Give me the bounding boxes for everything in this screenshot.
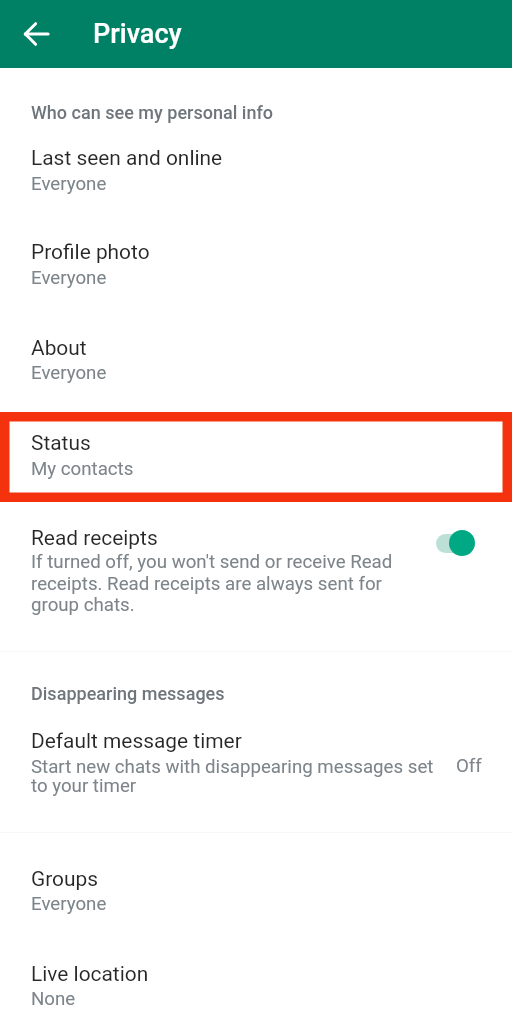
staticText: Privacy — [93, 18, 182, 50]
staticText: Live location — [31, 962, 149, 986]
staticText: Who can see my personal info — [31, 102, 274, 123]
button[interactable]: Profile photo — [0, 226, 512, 310]
button[interactable]: Read receipts on — [428, 526, 486, 560]
staticText: Status — [31, 431, 91, 455]
staticText: Default message timer — [31, 729, 242, 753]
staticText: Everyone — [31, 362, 107, 384]
button[interactable]: Default message timer — [0, 716, 512, 824]
staticText: Groups — [31, 867, 99, 891]
button[interactable]: Read receipts — [0, 510, 512, 630]
button[interactable]: Groups — [0, 852, 512, 936]
staticText: Everyone — [31, 893, 107, 915]
staticText: Disappearing messages — [31, 683, 225, 704]
staticText: My contacts — [31, 458, 134, 480]
staticText: Everyone — [31, 267, 107, 289]
staticText: Everyone — [31, 173, 107, 195]
staticText: If turned off, you won't send or receive… — [31, 551, 407, 615]
staticText: Off — [456, 755, 482, 777]
staticText: Read receipts — [31, 526, 158, 550]
button[interactable]: Live location — [0, 947, 512, 1024]
staticText: About — [31, 336, 87, 360]
button[interactable]: About — [0, 321, 512, 405]
button[interactable]: Navigate back — [12, 9, 62, 59]
button[interactable]: Last seen and online — [0, 132, 512, 216]
staticText: Start new chats with disappearing messag… — [31, 756, 439, 797]
staticText: Profile photo — [31, 240, 150, 264]
staticText: Last seen and online — [31, 146, 223, 170]
button[interactable]: Status — [0, 412, 512, 502]
staticText: None — [31, 988, 76, 1010]
